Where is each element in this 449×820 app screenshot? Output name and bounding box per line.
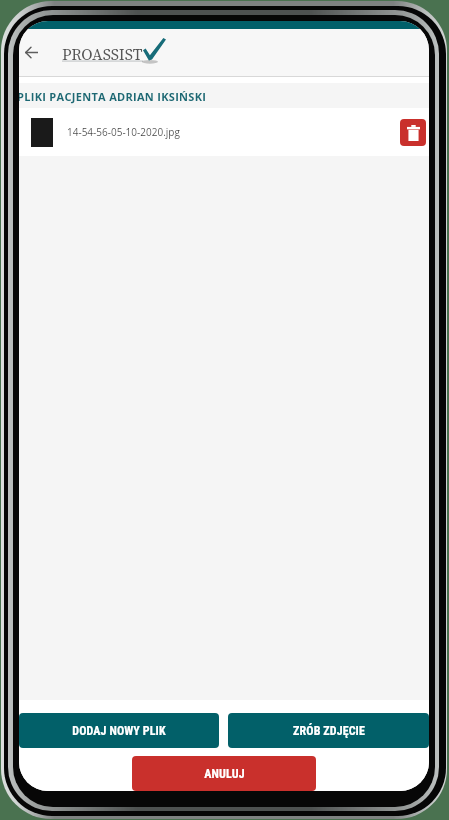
button[interactable]: Delete file — [400, 119, 426, 146]
staticText: DODAJ NOWY PLIK — [72, 724, 166, 738]
staticText: 14-54-56-05-10-2020.jpg — [67, 125, 180, 139]
button[interactable]: Back — [19, 32, 43, 72]
staticText: PROASSIST — [62, 43, 143, 65]
button[interactable]: ANULUJ — [132, 756, 316, 791]
button[interactable]: ZRÓB ZDJĘCIE — [228, 713, 429, 748]
button[interactable]: 14-54-56-05-10-2020.jpg — [19, 108, 429, 156]
staticText: PLIKI PACJENTA ADRIAN IKSIŃSKI — [19, 89, 207, 104]
staticText: ANULUJ — [204, 767, 245, 781]
button[interactable]: DODAJ NOWY PLIK — [19, 713, 219, 748]
staticText: ZRÓB ZDJĘCIE — [293, 724, 365, 738]
